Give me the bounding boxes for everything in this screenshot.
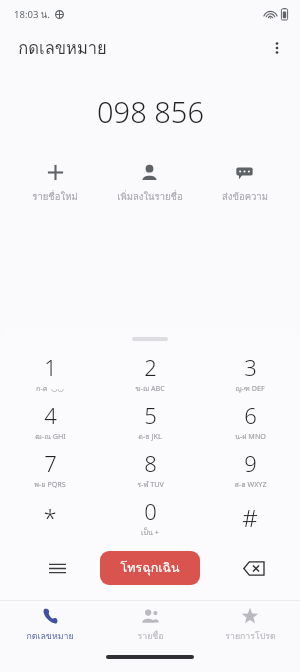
staticText: ส-ฮ WXYZ	[234, 479, 267, 490]
button[interactable]: 3	[200, 349, 300, 397]
button[interactable]: #	[200, 493, 300, 541]
staticText: ฆ-ฌ ABC	[135, 383, 165, 394]
button[interactable]: 8	[100, 445, 200, 493]
staticText: 8	[144, 448, 157, 478]
staticText: ส่งข้อความ	[222, 189, 268, 204]
button[interactable]: Send message	[197, 161, 292, 206]
staticText: รายชื่อใหม่	[32, 189, 78, 204]
staticText: 0	[144, 496, 157, 526]
staticText: น-ฝ MNO	[235, 431, 266, 442]
button[interactable]: 5	[100, 397, 200, 445]
button[interactable]: Keypad options	[40, 551, 74, 585]
staticText: เป็น +	[141, 527, 159, 538]
staticText: พ-ย PQRS	[34, 479, 66, 490]
staticText: ญ-ฑ DEF	[235, 383, 265, 394]
staticText: 098 856	[97, 92, 204, 131]
staticText: 4	[44, 400, 57, 430]
button[interactable]: กดเลขหมาย	[0, 601, 100, 649]
staticText: 7	[44, 448, 57, 478]
button[interactable]: New contact	[8, 161, 102, 206]
button[interactable]: 4	[0, 397, 100, 445]
staticText: ด-ธ JKL	[138, 431, 162, 442]
button[interactable]: Delete	[236, 551, 270, 585]
button[interactable]: 2	[100, 349, 200, 397]
staticText: 5	[144, 400, 157, 430]
button[interactable]: โทรฉุกเฉิน	[100, 551, 200, 585]
staticText: โทรฉุกเฉิน	[120, 558, 180, 578]
button[interactable]: รายชื่อ	[100, 601, 200, 649]
button[interactable]: รายการโปรด	[200, 601, 300, 649]
staticText: รายชื่อ	[137, 629, 164, 643]
button[interactable]: 9	[200, 445, 300, 493]
button[interactable]: *	[0, 493, 100, 541]
button[interactable]: 1	[0, 349, 100, 397]
button[interactable]: Add to contact	[102, 161, 197, 206]
staticText: 9	[244, 448, 257, 478]
button[interactable]: 7	[0, 445, 100, 493]
staticText: ร-ฬ TUV	[137, 479, 164, 490]
staticText: รายการโปรด	[225, 629, 276, 643]
button[interactable]: 0	[100, 493, 200, 541]
staticText: *	[43, 501, 57, 534]
staticText: เพิ่มลงในรายชื่อ	[117, 189, 183, 204]
staticText: #	[242, 501, 258, 534]
staticText: 18:03 น.	[14, 7, 50, 22]
staticText: กดเลขหมาย	[18, 35, 107, 61]
button[interactable]: 6	[200, 397, 300, 445]
staticText: 2	[144, 352, 157, 382]
staticText: ฒ-ณ GHI	[35, 431, 66, 442]
staticText: กดเลขหมาย	[26, 629, 74, 643]
staticText: 6	[244, 400, 257, 430]
staticText: 3	[244, 352, 257, 382]
button[interactable]: กดเลขหมาย	[18, 35, 107, 61]
button[interactable]: More options	[260, 31, 294, 65]
staticText: 1	[44, 352, 57, 382]
staticText: ก-ฅ ◡◡	[36, 383, 64, 394]
